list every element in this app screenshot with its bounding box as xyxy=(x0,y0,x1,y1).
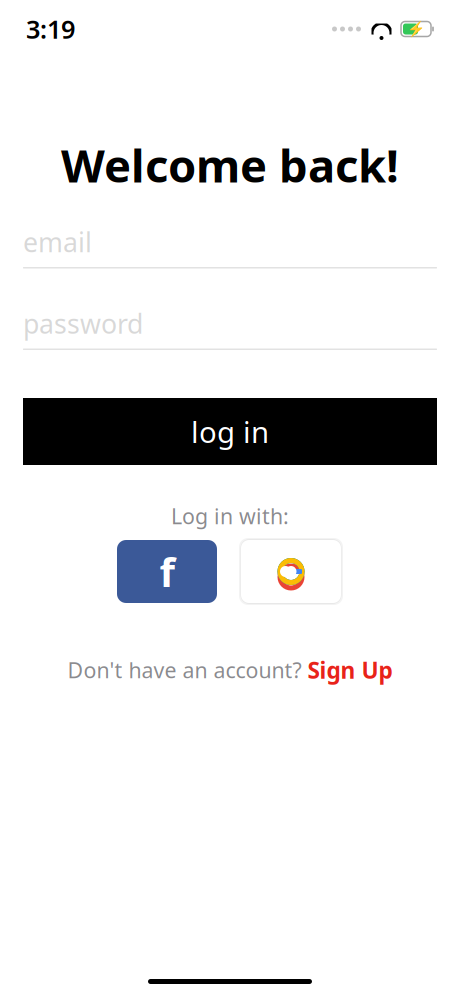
button[interactable]: email xyxy=(23,225,437,268)
button[interactable]: password xyxy=(23,306,437,350)
staticText: log in xyxy=(191,412,269,451)
staticText: f xyxy=(159,545,174,598)
staticText: Don't have an account? xyxy=(67,656,301,684)
button[interactable]: log in xyxy=(23,398,437,465)
button[interactable]: Log in with Facebook xyxy=(117,540,217,603)
staticText: email xyxy=(23,224,92,260)
button[interactable]: Log in with Google xyxy=(239,538,343,605)
staticText: Welcome back! xyxy=(61,135,399,195)
staticText: Log in with: xyxy=(171,502,289,530)
staticText: 3:19 xyxy=(26,12,75,46)
staticText: Sign Up xyxy=(307,655,392,685)
staticText: ⚡ xyxy=(407,21,425,37)
button[interactable]: Sign Up xyxy=(307,655,392,685)
staticText: password xyxy=(23,306,143,341)
